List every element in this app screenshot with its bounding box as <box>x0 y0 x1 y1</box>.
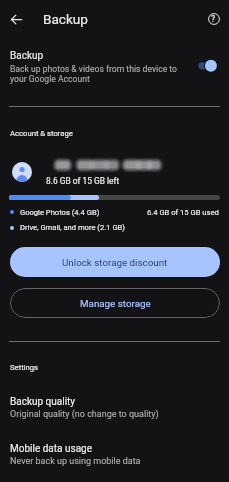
staticText: Unlock storage discount <box>62 257 168 268</box>
button[interactable]: Navigate up <box>5 8 28 31</box>
staticText: Backup <box>43 11 88 27</box>
button[interactable]: Backup toggle <box>196 56 218 76</box>
button[interactable]: Unlock storage discount <box>10 247 220 277</box>
staticText: Never back up using mobile data <box>10 456 141 467</box>
staticText: Backup <box>10 50 44 62</box>
button[interactable]: Backup quality <box>0 392 229 425</box>
staticText: Settings <box>10 363 39 372</box>
staticText: Original quality (no change to quality) <box>10 409 159 420</box>
staticText: Drive, Gmail, and more (2.1 GB) <box>20 223 125 232</box>
staticText: Backup quality <box>10 396 76 408</box>
staticText: Account & storage <box>10 129 73 138</box>
staticText: Google Photos (4.4 GB) <box>20 208 100 217</box>
staticText: Mobile data usage <box>10 443 92 455</box>
staticText: Manage storage <box>80 298 151 309</box>
button[interactable]: Mobile data usage <box>0 439 229 472</box>
staticText: ? <box>211 14 216 24</box>
staticText: Back up photos & videos from this device… <box>10 64 188 85</box>
button[interactable]: Help & feedback <box>202 7 225 30</box>
staticText: 8.6 GB of 15 GB left <box>46 176 120 186</box>
button[interactable]: Manage storage <box>10 288 220 318</box>
staticText: 6.4 GB of 15 GB used <box>147 208 219 217</box>
